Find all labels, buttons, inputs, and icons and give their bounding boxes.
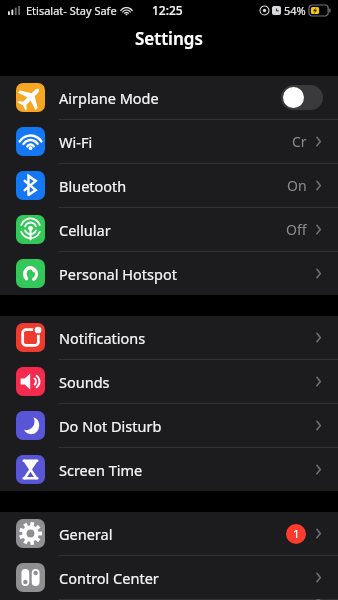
button[interactable]: General: [0, 512, 338, 556]
staticText: General: [59, 524, 286, 544]
staticText: 1: [293, 526, 300, 542]
staticText: On: [287, 176, 307, 195]
staticText: Screen Time: [59, 460, 314, 480]
staticText: Wi-Fi: [59, 132, 292, 152]
button[interactable]: Airplane Mode: [0, 76, 338, 120]
staticText: Cr: [292, 132, 307, 151]
button[interactable]: Screen Time: [0, 448, 338, 491]
staticText: Sounds: [59, 372, 314, 392]
button[interactable]: Sounds: [0, 360, 338, 404]
staticText: Cellular: [59, 220, 286, 240]
button[interactable]: Control Center: [0, 556, 338, 600]
button[interactable]: Cellular: [0, 208, 338, 252]
button[interactable]: Wi-Fi: [0, 120, 338, 164]
staticText: 54%: [284, 3, 306, 18]
staticText: Do Not Disturb: [59, 416, 314, 436]
staticText: Etisalat- Stay Safe: [26, 3, 117, 18]
staticText: Notifications: [59, 328, 314, 348]
button[interactable]: Notifications: [0, 316, 338, 360]
staticText: Off: [286, 220, 307, 239]
staticText: Personal Hotspot: [59, 264, 314, 284]
staticText: Bluetooth: [59, 176, 287, 196]
staticText: Settings: [135, 27, 203, 50]
staticText: 12:25: [152, 2, 183, 18]
button[interactable]: Bluetooth: [0, 164, 338, 208]
button[interactable]: Airplane Mode toggle: [281, 85, 323, 110]
button[interactable]: Personal Hotspot: [0, 252, 338, 295]
button[interactable]: Do Not Disturb: [0, 404, 338, 448]
staticText: Airplane Mode: [59, 88, 281, 108]
staticText: Control Center: [59, 568, 314, 588]
